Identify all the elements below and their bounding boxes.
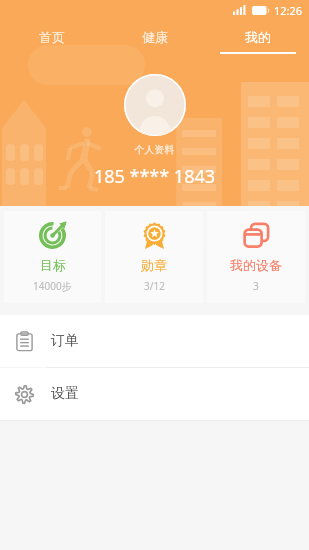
button[interactable]: 首页 [0,20,103,58]
staticText: 目标 [40,257,66,273]
staticText: 订单 [51,332,79,350]
button[interactable]: Settings [0,368,309,420]
staticText: 14000步 [33,279,72,293]
staticText: 我的设备 [230,257,282,273]
button[interactable]: 我的设备 [207,211,305,303]
button[interactable]: Orders [0,315,309,367]
button[interactable]: 勋章 [105,211,203,303]
staticText: 首页 [39,29,65,45]
button[interactable]: 我的 [206,20,309,58]
button[interactable]: 健康 [103,20,206,58]
staticText: 健康 [142,29,168,45]
staticText: 185 **** 1843 [0,164,309,189]
staticText: 个人资料 [0,143,309,156]
button[interactable]: Profile avatar [124,74,186,136]
other: Orders [15,332,34,351]
staticText: 3/12 [144,279,165,293]
staticText: 设置 [51,385,79,403]
staticText: 12:26 [274,3,303,18]
staticText: 勋章 [141,257,167,273]
other: Settings [15,385,34,404]
staticText: 我的 [245,29,271,45]
button[interactable]: 目标 [4,211,101,303]
staticText: 3 [253,279,259,293]
